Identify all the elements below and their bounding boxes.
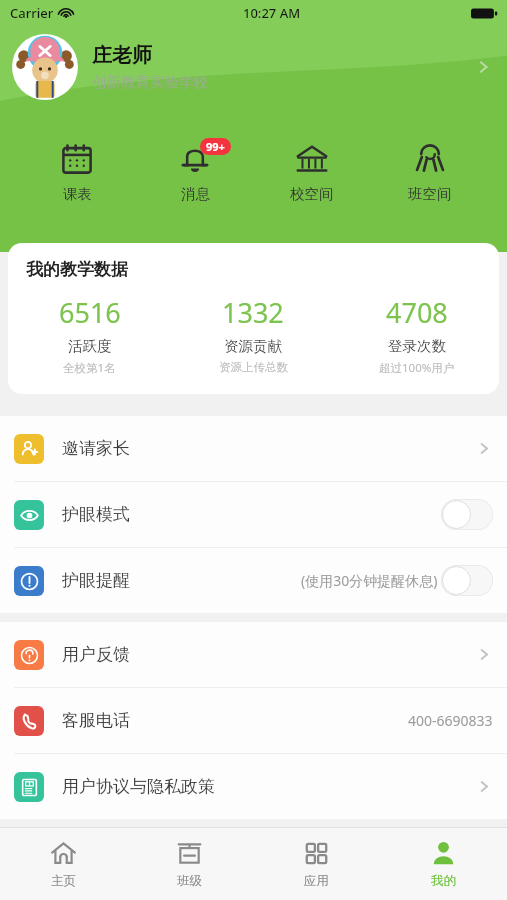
staticText: 超过100%用户 [379,360,455,376]
button[interactable]: 主页 [0,828,126,900]
button[interactable]: 护眼提醒 [0,548,507,613]
staticText: 客服电话 [62,710,130,731]
staticText: 活跃度 [68,337,112,355]
button[interactable]: 用户反馈 [0,622,507,687]
staticText: Carrier [10,4,54,22]
staticText: 校空间 [290,185,334,203]
button[interactable]: 99+ [155,140,235,205]
button[interactable]: 用户协议与隐私政策 [0,754,507,819]
button[interactable]: 护眼模式 [441,499,493,530]
staticText: 班级 [177,873,202,889]
staticText: 资源贡献 [224,337,282,355]
staticText: 主页 [51,873,76,889]
button[interactable]: 邀请家长 [0,416,507,481]
staticText: 班空间 [408,185,452,203]
staticText: 4708 [386,294,448,331]
button[interactable]: 班级 [126,828,253,900]
staticText: 我的 [431,873,456,889]
staticText: 邀请家长 [62,438,130,459]
staticText: (使用30分钟提醒休息) [301,571,438,590]
button[interactable]: 庄老师 [0,32,507,102]
staticText: 99+ [206,139,225,154]
staticText: 10:27 AM [243,4,301,22]
button[interactable]: 应用 [253,828,380,900]
staticText: 登录次数 [388,337,446,355]
staticText: 护眼模式 [62,504,130,525]
button[interactable]: 班空间 [390,140,470,205]
staticText: 用户反馈 [62,644,130,665]
staticText: 全校第1名 [63,360,116,376]
staticText: 应用 [304,873,329,889]
staticText: 400-6690833 [408,711,493,730]
staticText: 护眼提醒 [62,570,130,591]
staticText: 庄老师 [92,43,152,68]
button[interactable]: 护眼模式 [0,482,507,547]
staticText: 6516 [59,294,121,331]
staticText: 课表 [63,185,92,203]
staticText: 消息 [181,185,210,203]
button[interactable]: 课表 [37,140,117,205]
staticText: 我的教学数据 [26,259,128,280]
button[interactable]: 校空间 [272,140,352,205]
button[interactable]: 护眼提醒 [441,565,493,596]
staticText: 创新教育实验学校 [92,73,208,91]
staticText: 用户协议与隐私政策 [62,776,215,797]
staticText: 1332 [222,294,284,331]
button[interactable]: 客服电话 [0,688,507,753]
staticText: 资源上传总数 [219,360,288,374]
button[interactable]: 我的 [380,828,507,900]
